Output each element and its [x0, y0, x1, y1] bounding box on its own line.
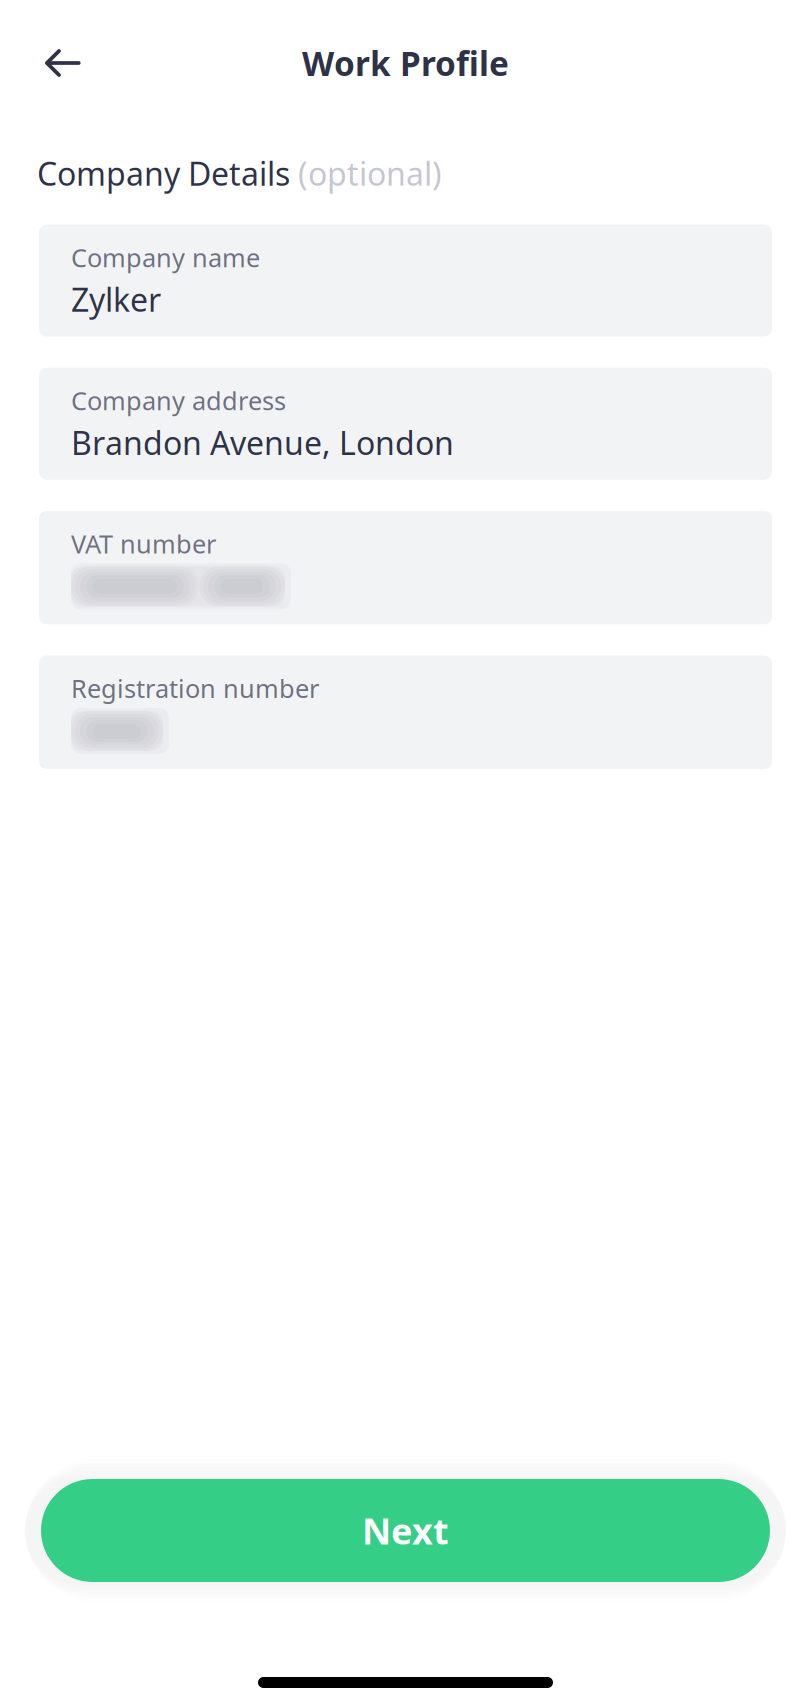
staticText: Work Profile	[302, 41, 509, 85]
button[interactable]: Company address	[39, 368, 772, 480]
staticText: Brandon Avenue, London	[71, 421, 454, 464]
button[interactable]: VAT number	[39, 511, 772, 624]
button[interactable]: Company name	[39, 224, 772, 337]
staticText: Company Details	[37, 152, 298, 194]
staticText: Company address	[71, 384, 286, 417]
staticText: (optional)	[298, 152, 442, 194]
button[interactable]: Registration number	[39, 655, 772, 769]
button[interactable]: Next	[41, 1479, 770, 1582]
staticText: Company name	[71, 240, 260, 274]
staticText: Registration number	[71, 671, 319, 705]
staticText: Zylker	[71, 278, 161, 321]
staticText: VAT number	[71, 527, 216, 560]
button[interactable]: Back	[0, 30, 103, 96]
staticText: Next	[362, 1507, 449, 1554]
